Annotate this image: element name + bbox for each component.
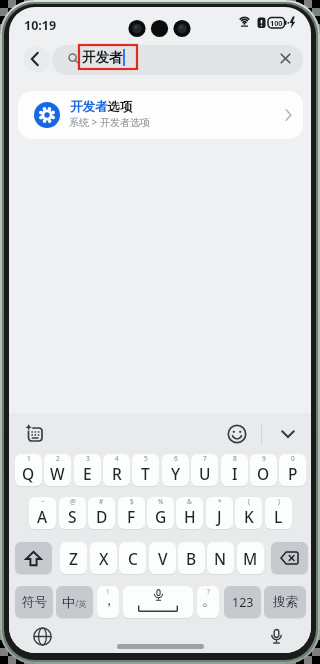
staticText: Y	[171, 463, 181, 484]
staticText: 7	[203, 454, 207, 463]
button[interactable]: Z	[60, 542, 87, 574]
button[interactable]: M	[237, 542, 264, 574]
button[interactable]: &	[176, 497, 203, 529]
staticText: Q	[22, 463, 35, 484]
button[interactable]: 123	[224, 586, 261, 618]
staticText: 开发者选项	[70, 99, 133, 115]
button[interactable]	[270, 629, 283, 645]
staticText: A	[37, 506, 48, 527]
staticText: ?	[207, 587, 210, 596]
staticText: P	[288, 463, 298, 484]
button[interactable]: 符号	[15, 586, 53, 618]
staticText: @	[70, 497, 76, 506]
button[interactable]: 4	[103, 454, 130, 486]
staticText: T	[141, 463, 150, 484]
staticText: 8	[233, 454, 237, 463]
staticText: 3	[86, 454, 90, 463]
button[interactable]	[18, 91, 303, 139]
staticText: C	[128, 548, 138, 569]
staticText: $	[130, 497, 134, 506]
staticText: ~	[41, 497, 45, 506]
button[interactable]: @	[59, 497, 86, 529]
staticText: *	[218, 497, 222, 506]
button[interactable]: N	[207, 542, 234, 574]
button[interactable]: V	[149, 542, 176, 574]
button[interactable]: 3	[74, 454, 101, 486]
staticText: )	[278, 497, 280, 506]
staticText: U	[199, 463, 211, 484]
button[interactable]: 5	[132, 454, 159, 486]
staticText: W	[50, 463, 65, 484]
button[interactable]: 6	[162, 454, 189, 486]
button[interactable]	[281, 430, 295, 439]
button[interactable]: 中/英	[56, 586, 93, 618]
staticText: R	[112, 463, 122, 484]
button[interactable]: C	[119, 542, 146, 574]
staticText: !	[107, 587, 109, 596]
staticText: I	[232, 463, 238, 484]
staticText: Z	[69, 548, 78, 569]
staticText: O	[257, 463, 270, 484]
button[interactable]	[24, 46, 50, 72]
staticText: H	[184, 506, 196, 527]
button[interactable]	[15, 542, 52, 574]
button[interactable]: #	[88, 497, 115, 529]
staticText: ，	[102, 592, 116, 610]
staticText: F	[127, 506, 136, 527]
button[interactable]: 搜索	[264, 586, 306, 618]
staticText: 10:19	[24, 17, 57, 32]
staticText: D	[96, 506, 108, 527]
staticText: &	[187, 497, 192, 506]
button[interactable]: 1	[15, 454, 42, 486]
button[interactable]: $	[118, 497, 145, 529]
button[interactable]: )	[265, 497, 292, 529]
staticText: E	[83, 463, 92, 484]
staticText: 6	[174, 454, 178, 463]
staticText: 4	[115, 454, 119, 463]
staticText: 1	[27, 454, 31, 463]
staticText: J	[217, 506, 222, 527]
staticText: L	[274, 506, 283, 527]
button[interactable]: *	[206, 497, 233, 529]
staticText: 2	[56, 454, 60, 463]
staticText: G	[155, 506, 167, 527]
button[interactable]: X	[90, 542, 117, 574]
staticText: X	[99, 548, 109, 569]
button[interactable]: B	[178, 542, 205, 574]
staticText: 123	[232, 594, 254, 611]
staticText: %	[158, 497, 164, 506]
button[interactable]	[33, 627, 52, 646]
button[interactable]	[227, 424, 247, 444]
staticText: B	[186, 548, 197, 569]
staticText: N	[214, 548, 227, 569]
staticText: 。	[202, 592, 216, 610]
button[interactable]: 2	[44, 454, 71, 486]
button[interactable]: (	[235, 497, 262, 529]
staticText: 搜索	[273, 594, 298, 610]
staticText: (	[248, 497, 250, 506]
button[interactable]: 8	[221, 454, 248, 486]
staticText: 9	[262, 454, 266, 463]
button[interactable]: ?	[197, 586, 219, 618]
button[interactable]	[123, 586, 193, 618]
staticText: 符号	[22, 594, 47, 610]
staticText: #	[99, 497, 104, 506]
button[interactable]: %	[147, 497, 174, 529]
staticText: K	[244, 506, 254, 527]
button[interactable]	[52, 45, 303, 75]
staticText: 开发者	[82, 49, 123, 66]
button[interactable]	[280, 53, 291, 64]
button[interactable]	[25, 424, 45, 443]
staticText: 5	[144, 454, 148, 463]
staticText: 系统 > 开发者选项	[69, 115, 150, 129]
button[interactable]	[271, 542, 308, 574]
button[interactable]: ~	[29, 497, 56, 529]
staticText: S	[68, 506, 77, 527]
staticText: 中/英	[62, 594, 87, 611]
staticText: V	[158, 548, 168, 569]
button[interactable]: 0	[279, 454, 306, 486]
staticText: 0	[291, 454, 295, 463]
button[interactable]: !	[97, 586, 119, 618]
button[interactable]: 7	[191, 454, 218, 486]
button[interactable]: 9	[250, 454, 277, 486]
